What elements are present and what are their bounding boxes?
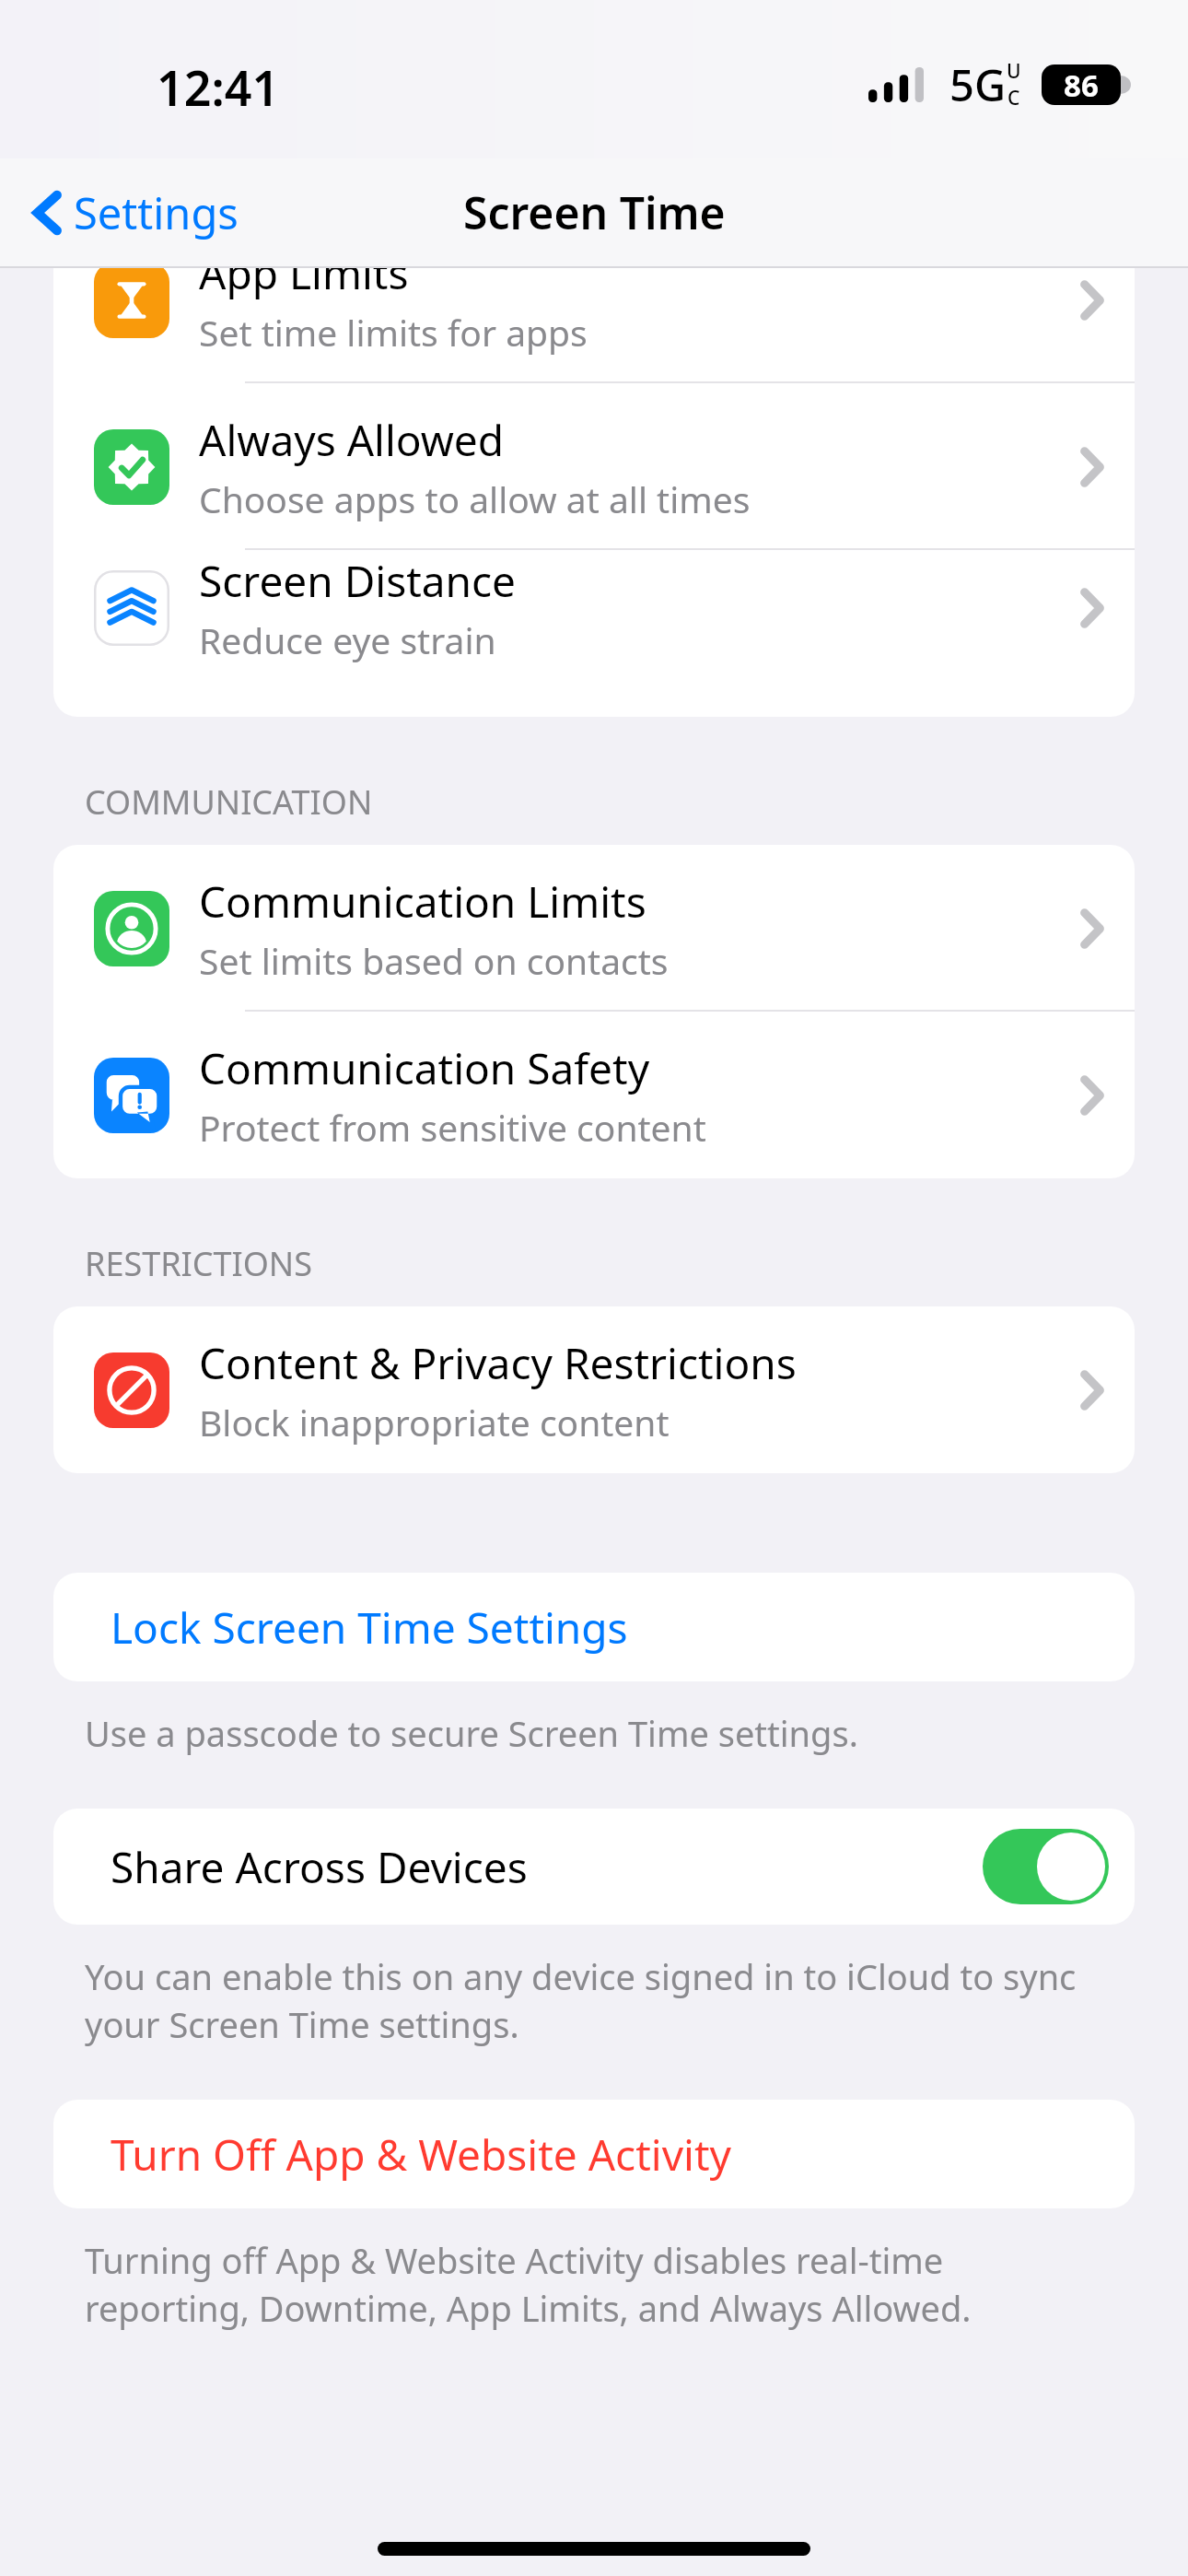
- staticText: Share Across Devices: [111, 1838, 528, 1896]
- button[interactable]: Settings: [24, 169, 250, 257]
- staticText: App Limits: [199, 268, 409, 302]
- staticText: Block inappropriate content: [199, 1398, 670, 1446]
- button[interactable]: Content & Privacy Restrictions: [53, 1306, 1135, 1473]
- button[interactable]: App Limits: [53, 268, 1135, 383]
- staticText: Choose apps to allow at all times: [199, 474, 751, 523]
- button[interactable]: Always Allowed: [53, 383, 1135, 550]
- button[interactable]: Communication Safety: [53, 1012, 1135, 1178]
- staticText: Content & Privacy Restrictions: [199, 1334, 797, 1392]
- staticText: Set limits based on contacts: [199, 936, 669, 985]
- staticText: Lock Screen Time Settings: [111, 1598, 628, 1657]
- staticText: Set time limits for apps: [199, 308, 588, 357]
- staticText: Screen Distance: [199, 552, 517, 610]
- staticText: RESTRICTIONS: [85, 1241, 312, 1286]
- staticText: COMMUNICATION: [85, 779, 373, 825]
- staticText: Use a passcode to secure Screen Time set…: [85, 1709, 858, 1757]
- staticText: Communication Safety: [199, 1039, 650, 1097]
- staticText: Turning off App & Website Activity disab…: [85, 2236, 1092, 2332]
- staticText: Settings: [74, 183, 239, 242]
- staticText: 5G: [949, 55, 1007, 114]
- button[interactable]: Lock Screen Time Settings: [53, 1573, 1135, 1681]
- staticText: 86: [1064, 64, 1099, 105]
- staticText: U: [1007, 58, 1021, 85]
- staticText: Always Allowed: [199, 411, 505, 469]
- staticText: Reduce eye strain: [199, 615, 496, 664]
- staticText: Protect from sensitive content: [199, 1103, 706, 1152]
- button[interactable]: Communication Limits: [53, 845, 1135, 1012]
- staticText: Screen Time: [463, 182, 726, 242]
- staticText: 12:41: [157, 54, 280, 120]
- button[interactable]: Turn Off App & Website Activity: [53, 2100, 1135, 2208]
- button[interactable]: Screen Distance: [53, 550, 1135, 665]
- button[interactable]: Share Across Devices: [53, 1809, 1135, 1925]
- staticText: C: [1007, 85, 1020, 111]
- staticText: Communication Limits: [199, 872, 646, 931]
- staticText: Turn Off App & Website Activity: [111, 2125, 731, 2184]
- staticText: You can enable this on any device signed…: [85, 1952, 1092, 2048]
- button[interactable]: Share Across Devices, on: [983, 1829, 1109, 1904]
